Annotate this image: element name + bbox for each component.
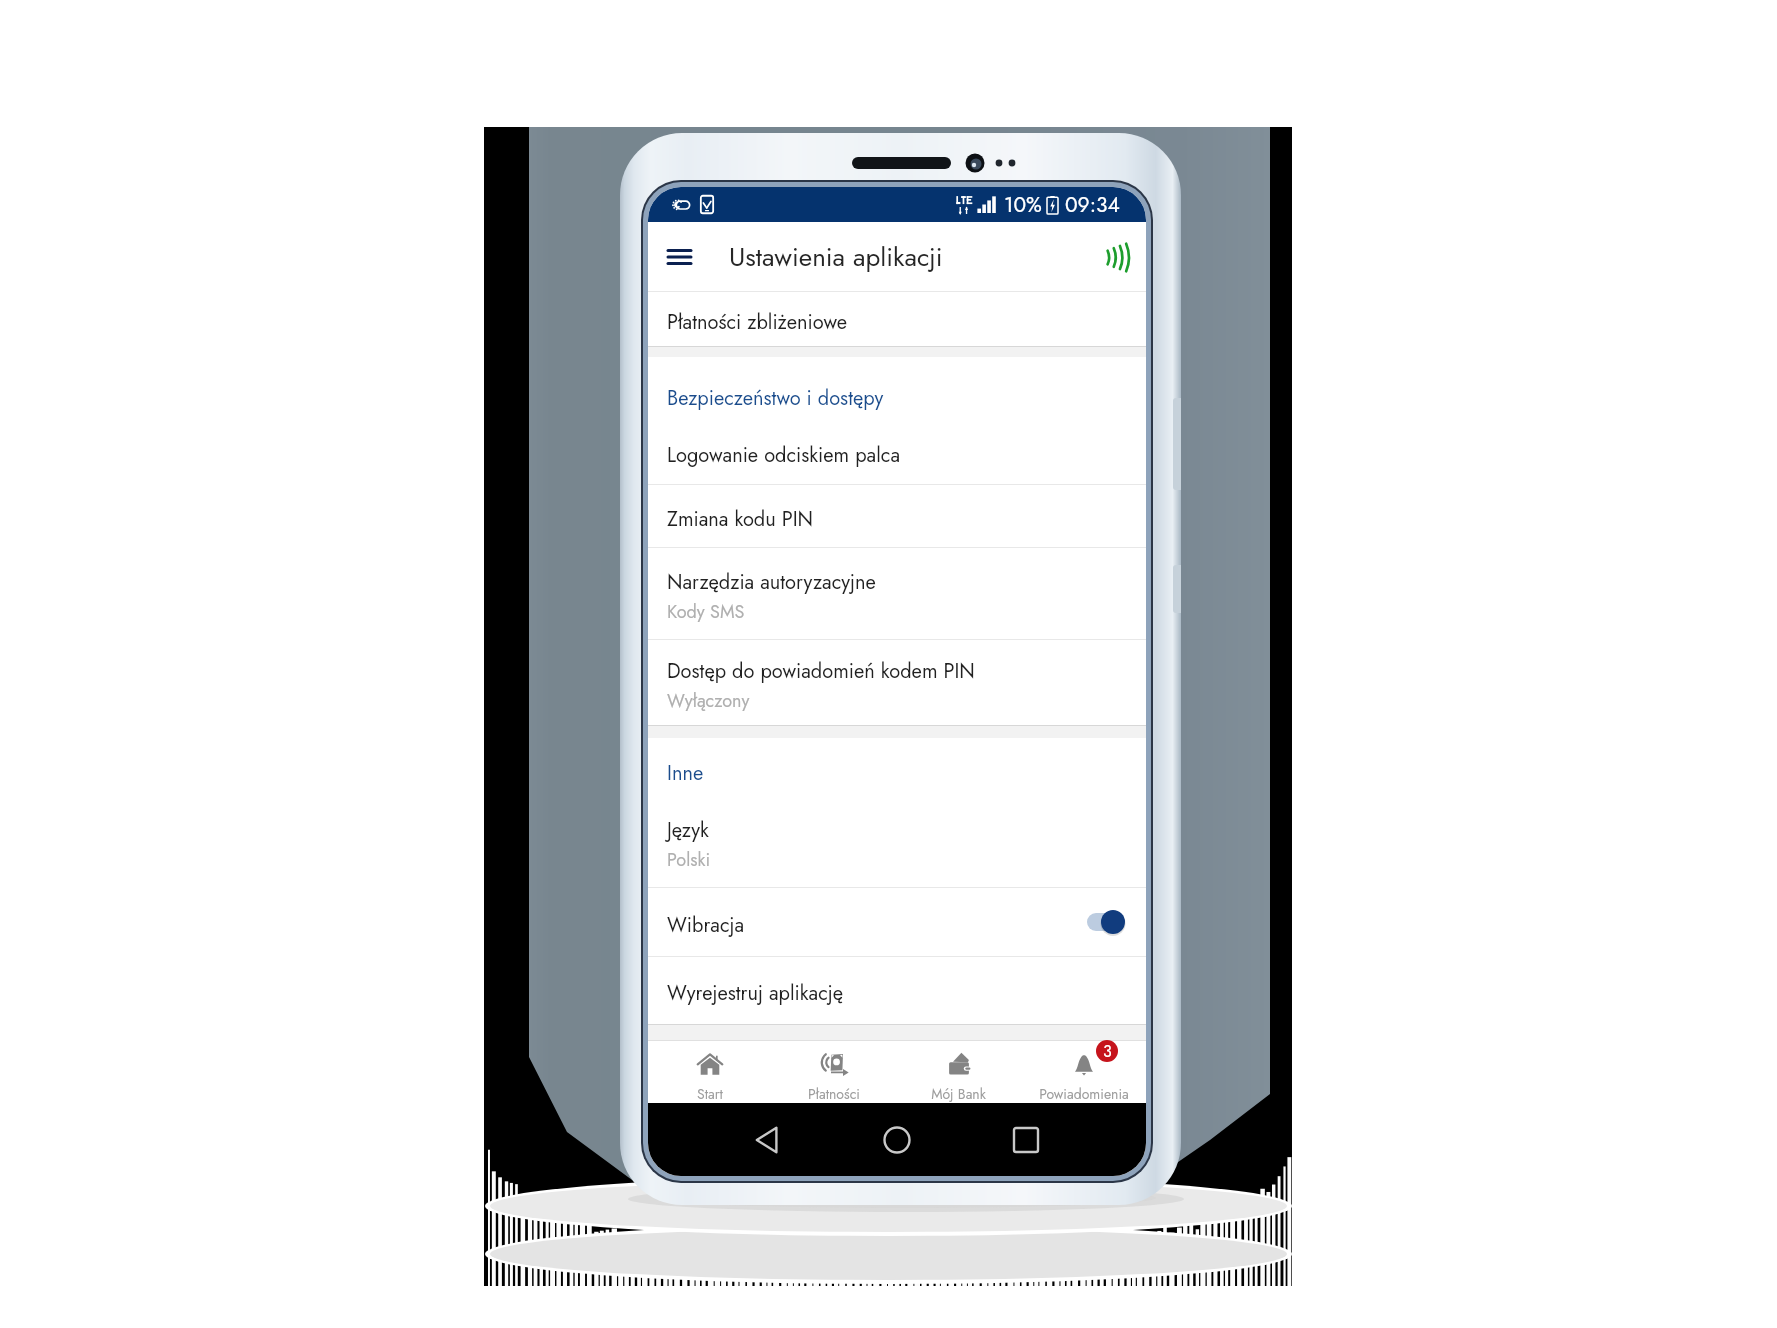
staticText: Powiadomienia <box>1039 1084 1129 1103</box>
staticText: Logowanie odciskiem palca <box>667 441 900 470</box>
staticText: Płatności <box>808 1084 860 1103</box>
staticText: Mój Bank <box>931 1084 986 1103</box>
staticText: Start <box>697 1084 723 1103</box>
staticText: Kody SMS <box>667 599 745 625</box>
button[interactable]: Recents <box>999 1113 1053 1167</box>
button[interactable]: 3 <box>1021 1041 1146 1103</box>
staticText: 10% <box>1004 190 1042 220</box>
button[interactable]: Zmiana kodu PIN <box>648 485 1146 547</box>
staticText: Płatności zbliżeniowe <box>667 308 848 337</box>
button[interactable]: Start <box>648 1041 772 1103</box>
staticText: Bezpieczeństwo i dostępy <box>667 384 884 413</box>
button[interactable]: Język <box>648 796 1146 887</box>
button[interactable]: Dostęp do powiadomień kodem PIN <box>648 640 1146 725</box>
staticText: 3 <box>1103 1040 1112 1062</box>
button[interactable]: Mój Bank <box>896 1041 1021 1103</box>
staticText: Narzędzia autoryzacyjne <box>667 568 876 597</box>
button[interactable]: Wibracja <box>648 888 1146 956</box>
button[interactable]: Narzędzia autoryzacyjne <box>648 548 1146 639</box>
staticText: Wibracja <box>667 911 745 940</box>
button[interactable]: Menu <box>657 231 701 283</box>
staticText: 09:34 <box>1065 190 1120 220</box>
button[interactable]: Płatności <box>772 1041 896 1103</box>
staticText: Język <box>667 816 709 845</box>
staticText: Wyrejestruj aplikację <box>667 979 844 1008</box>
staticText: Wyłączony <box>667 688 750 714</box>
staticText: Ustawienia aplikacji <box>729 238 943 276</box>
button[interactable]: Wyrejestruj aplikację <box>648 957 1146 1024</box>
button[interactable]: Płatności zbliżeniowe <box>648 292 1146 346</box>
staticText: Inne <box>667 759 704 788</box>
staticText: Dostęp do powiadomień kodem PIN <box>667 657 975 686</box>
staticText: Polski <box>667 847 711 873</box>
button[interactable]: NFC <box>1095 231 1139 283</box>
button[interactable]: Logowanie odciskiem palca <box>648 420 1146 484</box>
staticText: Zmiana kodu PIN <box>667 505 814 534</box>
button[interactable]: Back <box>741 1113 795 1167</box>
button[interactable]: Home <box>870 1113 924 1167</box>
